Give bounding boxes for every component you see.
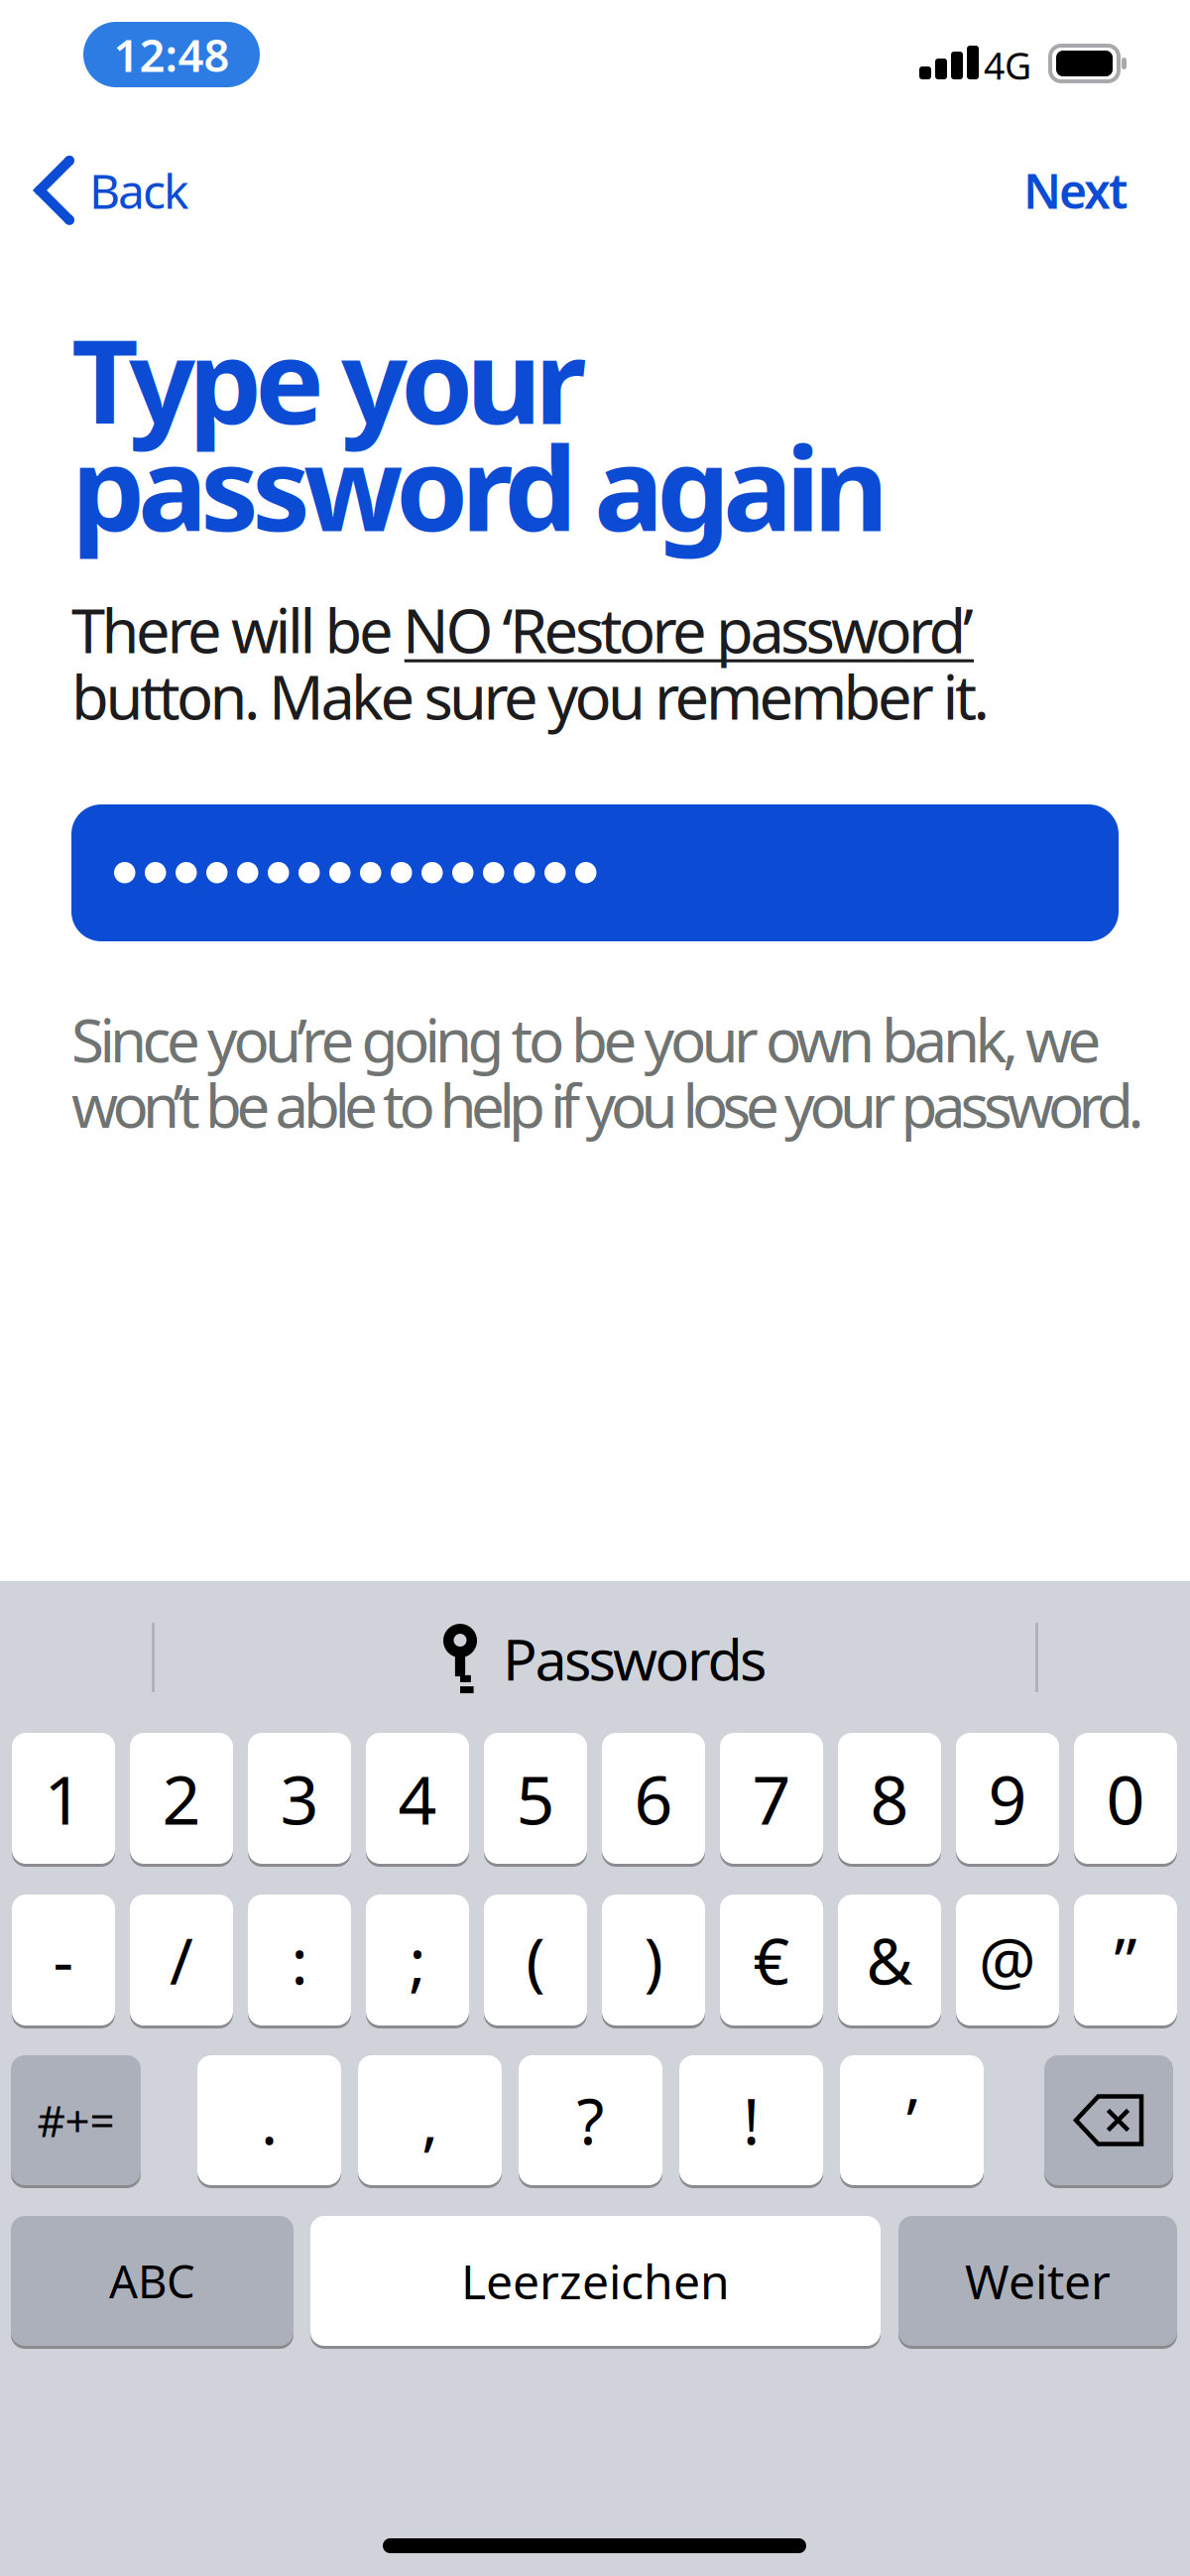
button[interactable]: ’ — [840, 2055, 984, 2185]
button[interactable]: ? — [519, 2055, 662, 2185]
staticText: 5 — [516, 1754, 555, 1843]
staticText: 9 — [988, 1754, 1027, 1843]
button[interactable]: 1 — [12, 1733, 115, 1864]
button[interactable]: 2 — [130, 1733, 233, 1864]
staticText: ; — [409, 1918, 426, 2002]
staticText: won’t be able to help if you lose your p… — [71, 1065, 1144, 1144]
staticText: ? — [577, 2078, 604, 2162]
staticText: Next — [1023, 159, 1128, 222]
staticText: 3 — [280, 1754, 319, 1843]
staticText: ! — [743, 2078, 760, 2162]
button[interactable]: Return to call — [83, 22, 260, 87]
staticText: There will be NO ‘Restore password’ — [71, 589, 974, 670]
button[interactable]: 5 — [484, 1733, 587, 1864]
staticText: @ — [979, 1918, 1036, 2002]
staticText: Weiter — [965, 2249, 1111, 2312]
button[interactable]: ABC — [11, 2216, 294, 2346]
button[interactable]: Leerzeichen — [310, 2216, 881, 2346]
staticText: & — [866, 1918, 913, 2002]
staticText: 0 — [1106, 1754, 1145, 1843]
button[interactable]: ” — [1074, 1895, 1177, 2025]
staticText: 4G — [984, 41, 1031, 90]
button[interactable]: . — [197, 2055, 341, 2185]
button[interactable]: Next — [1023, 159, 1128, 222]
staticText: button. Make sure you remember it. — [71, 656, 989, 736]
staticText: ) — [644, 1918, 663, 2002]
staticText: Since you’re going to be your own bank, … — [71, 1000, 1101, 1079]
button[interactable]: #+= — [11, 2055, 141, 2185]
staticText: ” — [1114, 1918, 1137, 2002]
staticText: 4 — [398, 1754, 437, 1843]
staticText: 8 — [870, 1754, 909, 1843]
button[interactable]: ( — [484, 1895, 587, 2025]
staticText: - — [53, 1918, 74, 2002]
button[interactable]: - — [12, 1895, 115, 2025]
staticText: , — [421, 2078, 438, 2162]
button[interactable]: Back — [40, 159, 189, 222]
button[interactable]: ; — [366, 1895, 469, 2025]
button[interactable]: Password — [71, 804, 1119, 941]
staticText: Passwords — [503, 1621, 767, 1696]
staticText: 12:48 — [114, 25, 230, 84]
staticText: . — [261, 2078, 278, 2162]
staticText: 2 — [162, 1754, 201, 1843]
button[interactable]: @ — [956, 1895, 1059, 2025]
button[interactable]: 8 — [838, 1733, 941, 1864]
button[interactable]: 3 — [248, 1733, 351, 1864]
staticText: 7 — [752, 1754, 791, 1843]
staticText: password again — [71, 409, 889, 563]
button[interactable]: ) — [602, 1895, 705, 2025]
staticText: € — [753, 1918, 790, 2002]
button[interactable]: Delete — [1044, 2055, 1173, 2185]
staticText: : — [291, 1918, 308, 2002]
staticText: Type your — [71, 302, 586, 456]
button[interactable]: & — [838, 1895, 941, 2025]
staticText: Leerzeichen — [461, 2249, 730, 2312]
staticText: #+= — [37, 2091, 115, 2149]
button[interactable]: / — [130, 1895, 233, 2025]
staticText: 6 — [634, 1754, 673, 1843]
button[interactable]: 7 — [720, 1733, 823, 1864]
staticText: ( — [526, 1918, 545, 2002]
button[interactable]: : — [248, 1895, 351, 2025]
button[interactable]: 6 — [602, 1733, 705, 1864]
button[interactable]: 9 — [956, 1733, 1059, 1864]
staticText: ’ — [906, 2078, 917, 2162]
staticText: Back — [89, 159, 189, 222]
button[interactable]: Passwords — [443, 1621, 767, 1696]
button[interactable]: ! — [679, 2055, 823, 2185]
staticText: 1 — [44, 1754, 83, 1843]
staticText: / — [170, 1918, 193, 2002]
button[interactable]: 0 — [1074, 1733, 1177, 1864]
staticText: ABC — [109, 2251, 195, 2311]
button[interactable]: € — [720, 1895, 823, 2025]
button[interactable]: , — [358, 2055, 502, 2185]
button[interactable]: 4 — [366, 1733, 469, 1864]
button[interactable]: Weiter — [898, 2216, 1177, 2346]
